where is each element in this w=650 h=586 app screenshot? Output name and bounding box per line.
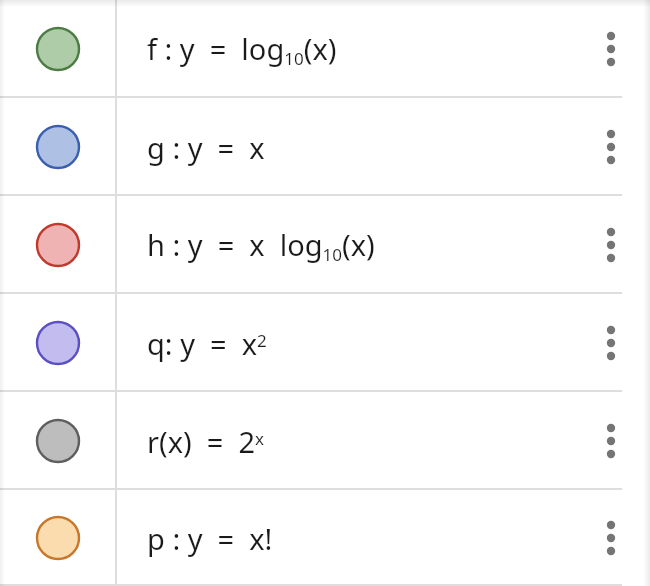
button[interactable]: More options	[572, 294, 650, 392]
staticText: g : y = x	[147, 128, 265, 167]
button[interactable]: Function colour	[0, 392, 650, 490]
staticText: p : y = x!	[147, 519, 273, 558]
staticText: h : y = x log10(x)	[147, 225, 375, 266]
button[interactable]: More options	[572, 392, 650, 490]
button[interactable]: More options	[572, 490, 650, 586]
button[interactable]: Function colour	[0, 392, 115, 490]
button[interactable]: Function colour	[0, 196, 650, 294]
button[interactable]: Function colour	[0, 98, 650, 196]
staticText: f : y = log10(x)	[147, 29, 337, 70]
staticText: r(x) = 2x	[147, 422, 265, 461]
button[interactable]: Function colour	[0, 490, 115, 586]
button[interactable]: More options	[572, 196, 650, 294]
staticText: q: y = x2	[147, 324, 267, 363]
button[interactable]: Function colour	[0, 0, 115, 98]
button[interactable]: Function colour	[0, 490, 650, 586]
button[interactable]: More options	[572, 98, 650, 196]
button[interactable]: Function colour	[0, 196, 115, 294]
button[interactable]: Function colour	[0, 294, 650, 392]
button[interactable]: More options	[572, 0, 650, 98]
button[interactable]: Function colour	[0, 98, 115, 196]
button[interactable]: Function colour	[0, 294, 115, 392]
button[interactable]: Function colour	[0, 0, 650, 98]
